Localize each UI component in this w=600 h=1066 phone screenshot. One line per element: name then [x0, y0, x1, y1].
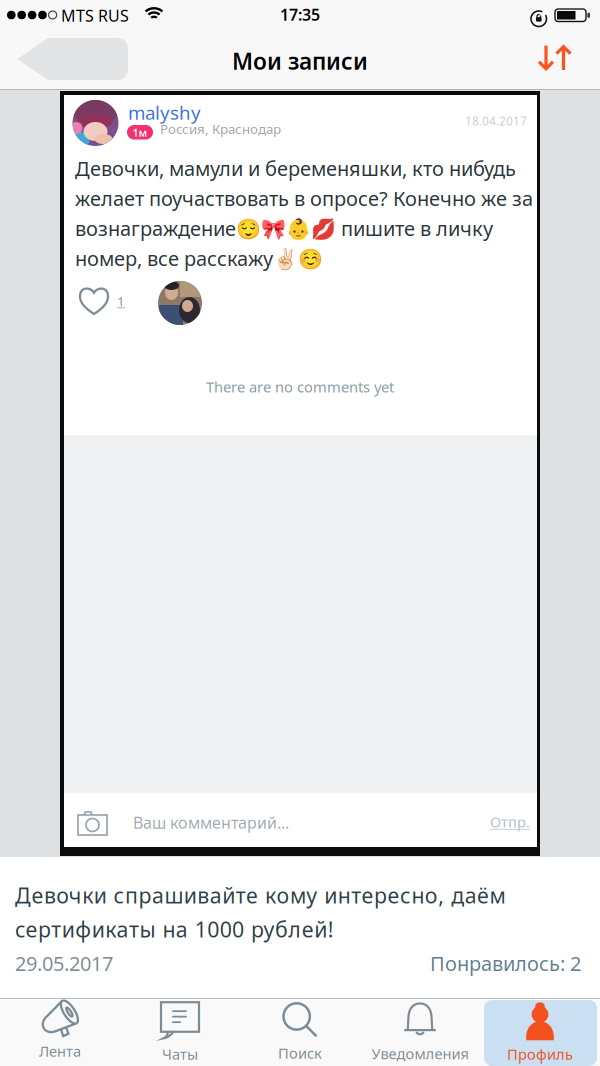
staticText: Профиль — [507, 1044, 573, 1064]
staticText: Мои записи — [232, 46, 368, 76]
button[interactable]: Лента — [0, 1001, 120, 1065]
button[interactable]: Добавить фото — [78, 811, 107, 835]
button[interactable]: Понравилось: 2 — [0, 950, 581, 977]
staticText: 29.05.2017 — [15, 950, 113, 977]
staticText: There are no comments yet — [206, 377, 394, 396]
button[interactable]: Ваш комментарий... — [133, 812, 289, 833]
staticText: Лента — [39, 1041, 81, 1061]
staticText: Девочки спрашивайте кому интересно, даём — [15, 881, 506, 909]
button[interactable]: Поиск — [240, 1001, 360, 1065]
button[interactable]: Отпр. — [0, 812, 530, 831]
staticText: вознаграждение😌🎀👶💋 пишите в личку — [75, 215, 493, 242]
staticText: Поиск — [278, 1043, 322, 1063]
button[interactable]: Профиль — [480, 1001, 600, 1065]
staticText: Отпр. — [490, 812, 530, 831]
button[interactable]: Сортировка — [539, 45, 570, 70]
button[interactable]: Чаты — [120, 1001, 240, 1065]
staticText: Чаты — [162, 1044, 198, 1064]
staticText: Уведомления — [371, 1044, 468, 1063]
staticText: Ваш комментарий... — [133, 812, 289, 833]
staticText: 17:35 — [280, 4, 320, 25]
staticText: желает поучаствовать в опросе? Конечно ж… — [75, 185, 533, 212]
staticText: 18.04.2017 — [465, 113, 527, 129]
button[interactable]: Уведомления — [360, 1001, 480, 1065]
staticText: MTS RUS — [61, 5, 129, 26]
button[interactable]: Назад — [17, 38, 128, 80]
button[interactable]: malyshy — [128, 100, 201, 125]
staticText: Россия, Краснодар — [160, 120, 281, 138]
button[interactable]: Нравится — [80, 288, 125, 314]
staticText: 1 — [117, 292, 125, 310]
staticText: номер, все расскажу✌🏻☺️ — [75, 245, 323, 272]
staticText: malyshy — [128, 100, 201, 125]
staticText: 1м — [132, 125, 147, 140]
staticText: Девочки, мамули и беременяшки, кто нибуд… — [75, 155, 516, 182]
staticText: сертификаты на 1000 рублей! — [15, 915, 334, 943]
staticText: Понравилось: 2 — [430, 950, 581, 977]
